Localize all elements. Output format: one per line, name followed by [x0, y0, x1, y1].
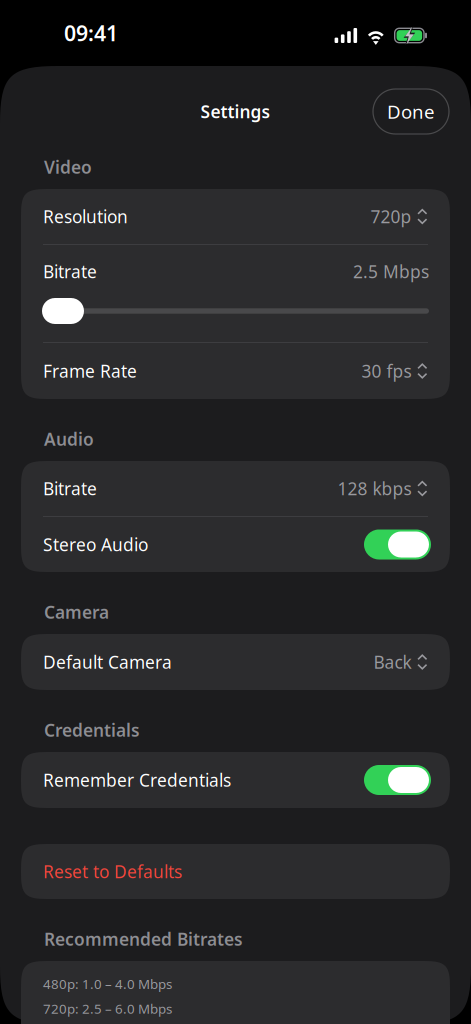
button[interactable]: Default Camera: [21, 634, 450, 690]
button[interactable]: Bitrate: [21, 461, 450, 516]
staticText: Audio: [44, 427, 94, 450]
staticText: Frame Rate: [43, 359, 137, 382]
button[interactable]: Resolution: [21, 189, 450, 244]
button[interactable]: Stereo Audio: [21, 517, 450, 572]
staticText: Back: [374, 650, 412, 673]
staticText: 720p: 2.5 – 6.0 Mbps: [43, 1000, 172, 1017]
staticText: 480p: 1.0 – 4.0 Mbps: [43, 975, 172, 993]
staticText: Bitrate: [43, 477, 97, 500]
staticText: Resolution: [43, 205, 128, 228]
staticText: 09:41: [64, 19, 118, 47]
staticText: Credentials: [44, 718, 140, 741]
staticText: 30 fps: [362, 359, 412, 382]
staticText: 128 kbps: [338, 477, 412, 500]
staticText: Reset to Defaults: [43, 860, 182, 883]
staticText: Bitrate: [43, 260, 97, 283]
staticText: Settings: [200, 100, 270, 123]
button[interactable]: Reset to Defaults: [21, 844, 450, 899]
staticText: Remember Credentials: [43, 768, 231, 791]
staticText: Stereo Audio: [43, 533, 148, 556]
button[interactable]: Done: [373, 89, 449, 134]
staticText: Video: [44, 155, 92, 178]
staticText: 2.5 Mbps: [353, 260, 429, 283]
staticText: Recommended Bitrates: [44, 927, 243, 950]
staticText: Camera: [44, 600, 109, 623]
staticText: Default Camera: [43, 650, 172, 673]
button[interactable]: Remember Credentials: [21, 752, 450, 808]
staticText: Done: [387, 99, 435, 124]
button[interactable]: Frame Rate: [21, 343, 450, 399]
staticText: 720p: [371, 205, 412, 228]
